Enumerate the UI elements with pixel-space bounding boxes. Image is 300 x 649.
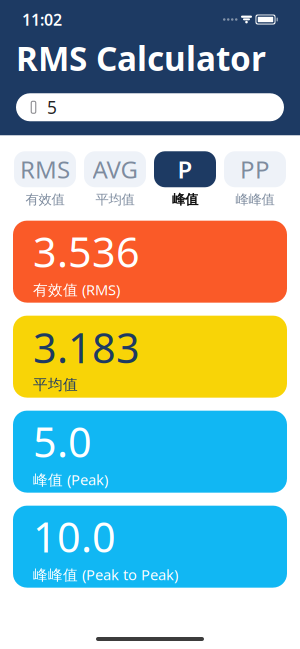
button[interactable]: RMS <box>14 151 76 208</box>
staticText: AVG <box>92 153 137 185</box>
staticText: 峰峰值 (Peak to Peak) <box>33 565 178 584</box>
staticText: 11:02 <box>22 9 62 30</box>
staticText: 3.183 <box>33 320 140 375</box>
staticText: 峰峰值 <box>235 191 274 208</box>
button[interactable]: 5.0 <box>13 411 287 493</box>
staticText: 5 <box>47 96 57 119</box>
staticText: 有效值 <box>25 191 64 208</box>
staticText: P <box>177 153 192 185</box>
staticText: 10.0 <box>33 509 116 564</box>
staticText: RMS <box>20 153 70 185</box>
staticText: RMS Calculator <box>16 36 266 80</box>
button[interactable]: 10.0 <box>13 506 287 588</box>
staticText: 峰值 <box>172 191 198 208</box>
button[interactable]: P <box>154 151 216 208</box>
button[interactable]: 5 <box>16 93 284 121</box>
button[interactable]: PP <box>224 151 286 208</box>
staticText: 峰值 (Peak) <box>33 470 108 489</box>
staticText: 有效值 (RMS) <box>33 280 120 299</box>
staticText: 3.536 <box>33 224 140 279</box>
button[interactable]: 3.183 <box>13 316 287 398</box>
button[interactable]: 3.536 <box>13 221 287 303</box>
staticText: 5.0 <box>33 414 92 469</box>
staticText: 平均值 <box>33 376 78 394</box>
button[interactable]: AVG <box>84 151 146 208</box>
staticText: PP <box>240 153 270 185</box>
staticText: 平均值 <box>95 191 134 208</box>
